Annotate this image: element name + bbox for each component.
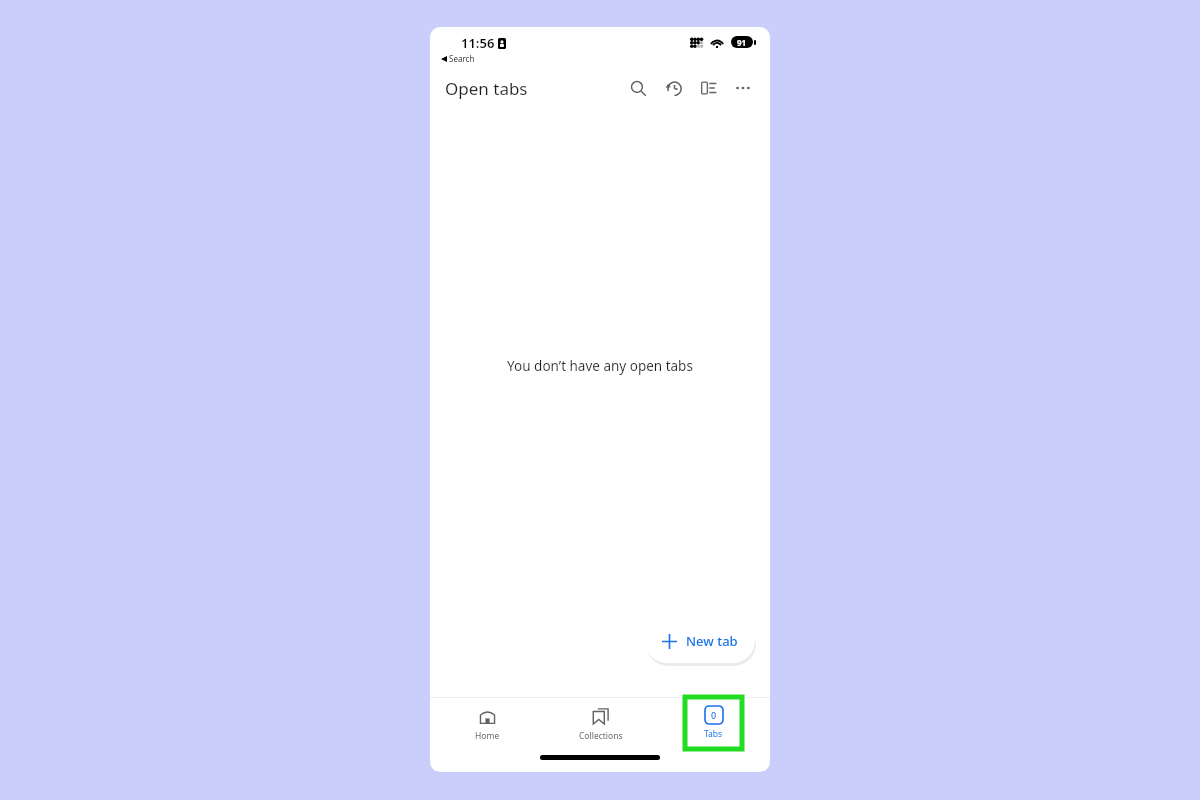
staticText: 11:56 <box>461 34 495 52</box>
staticText: 0 <box>711 709 717 721</box>
button[interactable]: More options <box>728 73 758 103</box>
staticText: Search <box>449 53 475 64</box>
staticText: Collections <box>579 730 623 742</box>
button[interactable]: Collections <box>544 707 657 742</box>
button[interactable]: New tab <box>645 619 755 663</box>
button[interactable]: Tab groups <box>694 73 724 103</box>
button[interactable]: Home <box>430 707 544 742</box>
staticText: New tab <box>686 632 738 650</box>
staticText: You don’t have any open tabs <box>507 357 693 375</box>
button[interactable]: Tabs, 0 open <box>685 697 742 749</box>
staticText: Open tabs <box>445 77 528 100</box>
staticText: Tabs <box>704 728 723 740</box>
staticText: Home <box>475 730 500 742</box>
staticText: 91 <box>737 37 747 48</box>
button[interactable]: History <box>659 73 689 103</box>
button[interactable]: Search <box>623 73 653 103</box>
other: Tabs, 0 open <box>705 706 723 724</box>
